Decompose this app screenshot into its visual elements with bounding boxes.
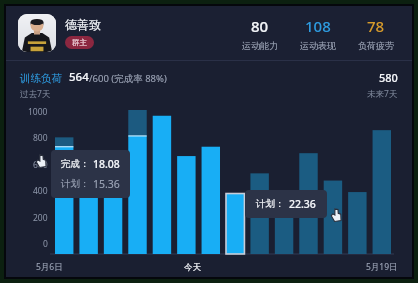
staticText: /600 (完成率 88%) — [89, 72, 167, 85]
button[interactable]: 完成： — [51, 150, 130, 198]
other: Pointer — [329, 208, 343, 222]
staticText: 运动表现 — [300, 40, 336, 51]
button[interactable]: 德善致 — [18, 14, 107, 52]
staticText: 22.36 — [289, 197, 316, 211]
staticText: 完成： — [61, 158, 90, 170]
staticText: 群主 — [72, 38, 87, 47]
other: Pointer — [34, 154, 48, 168]
staticText: 800 — [33, 132, 48, 144]
staticText: 负荷疲劳 — [358, 40, 394, 51]
button[interactable]: 计划： — [245, 190, 327, 218]
staticText: 18.08 — [93, 157, 120, 171]
staticText: 108 — [305, 16, 331, 36]
staticText: 未来7天 — [367, 88, 398, 100]
staticText: 200 — [33, 212, 48, 224]
staticText: 计划： — [256, 198, 285, 210]
staticText: 1000 — [28, 106, 48, 118]
button[interactable]: 80 — [240, 16, 280, 51]
staticText: 过去7天 — [20, 88, 51, 100]
button[interactable]: 78 — [356, 16, 396, 51]
staticText: 运动能力 — [242, 40, 278, 51]
staticText: 564 — [69, 69, 89, 85]
staticText: 15.36 — [93, 177, 120, 191]
staticText: 5月6日 — [36, 261, 63, 273]
staticText: 德善致 — [65, 17, 101, 32]
button[interactable]: 108 — [298, 16, 338, 51]
staticText: 78 — [367, 16, 385, 36]
staticText: 训练负荷 — [20, 72, 62, 85]
staticText: 0 — [43, 238, 48, 250]
staticText: 5月19日 — [366, 261, 398, 273]
staticText: 计划： — [61, 178, 90, 190]
staticText: 400 — [33, 185, 48, 197]
staticText: 580 — [379, 70, 398, 85]
staticText: 今天 — [184, 262, 201, 273]
staticText: 600 — [33, 159, 48, 171]
staticText: 80 — [251, 16, 269, 36]
